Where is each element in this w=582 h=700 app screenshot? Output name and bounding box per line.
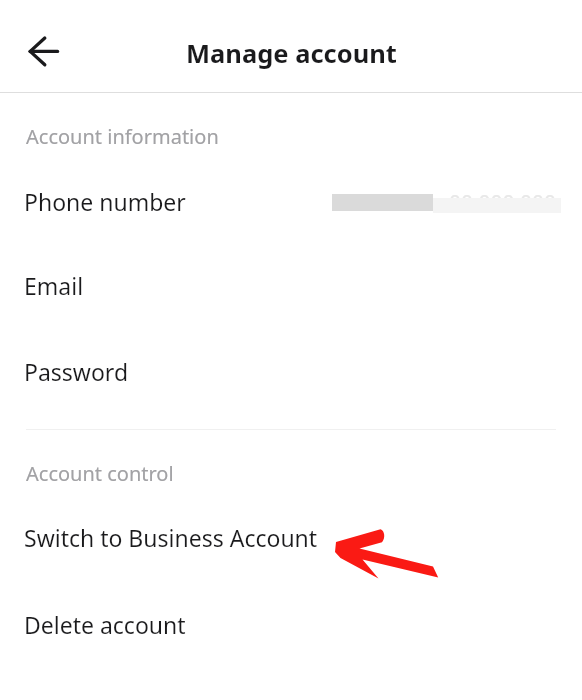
staticText: Account control <box>26 460 174 487</box>
staticText: Manage account <box>186 36 397 71</box>
button[interactable]: Switch to Business Account <box>0 504 582 590</box>
staticText: Phone number <box>24 186 186 217</box>
button[interactable]: Back <box>15 22 73 80</box>
button[interactable]: Delete account <box>0 591 582 677</box>
button[interactable]: Password <box>0 338 582 424</box>
button[interactable]: Email <box>0 252 582 338</box>
staticText: +00 000 000 <box>437 189 557 218</box>
staticText: Delete account <box>24 609 186 640</box>
staticText: Switch to Business Account <box>24 522 318 553</box>
staticText: Password <box>24 356 129 387</box>
button[interactable]: Phone number <box>0 168 582 254</box>
staticText: Account information <box>26 123 219 150</box>
staticText: Email <box>24 270 84 301</box>
